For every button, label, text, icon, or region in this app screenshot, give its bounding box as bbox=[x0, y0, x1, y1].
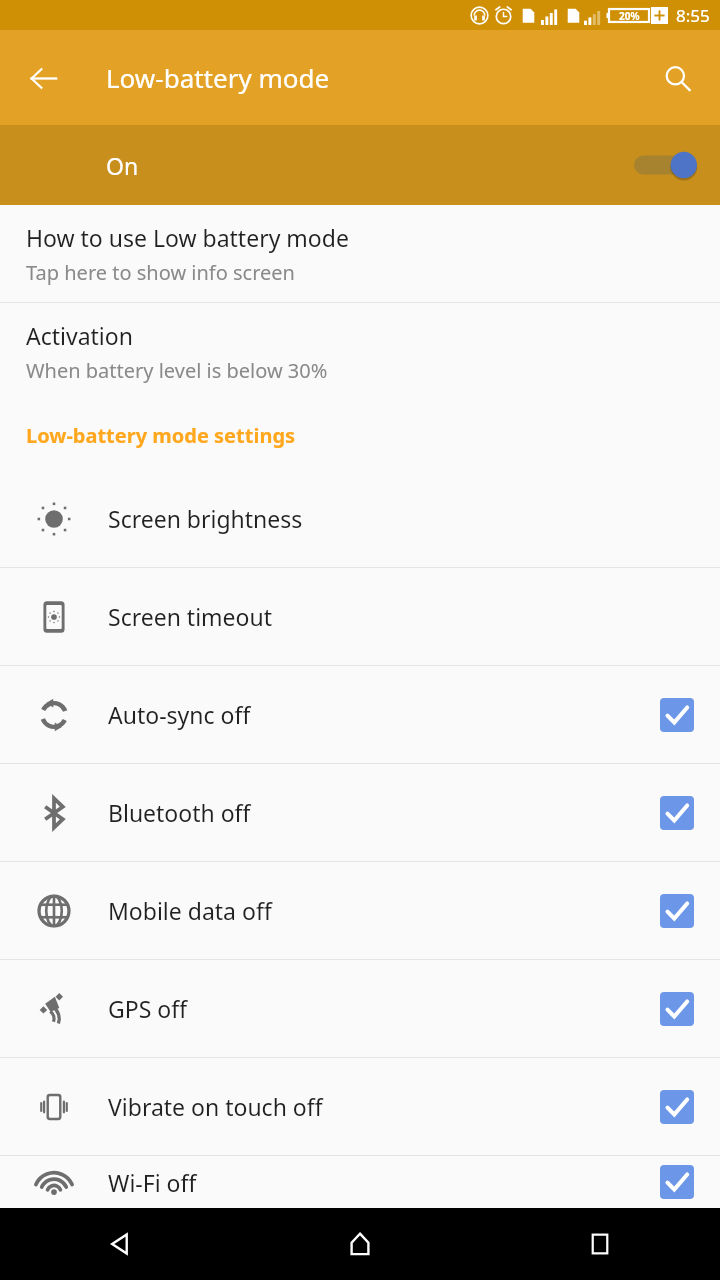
staticText: Tap here to show info screen bbox=[26, 259, 295, 286]
button[interactable]: On bbox=[0, 125, 720, 205]
button[interactable]: Screen brightness bbox=[0, 470, 720, 567]
button[interactable]: Screen timeout bbox=[0, 568, 720, 665]
staticText: 20% bbox=[619, 9, 640, 23]
staticText: GPS off bbox=[108, 993, 660, 1024]
staticText: Activation bbox=[26, 320, 133, 351]
button[interactable]: Wi-Fi off bbox=[0, 1156, 720, 1208]
button[interactable]: Recent apps bbox=[480, 1208, 720, 1280]
button[interactable]: Bluetooth off bbox=[0, 764, 720, 861]
staticText: Screen timeout bbox=[108, 601, 694, 632]
staticText: Screen brightness bbox=[108, 503, 694, 534]
button[interactable]: Activation bbox=[0, 303, 720, 400]
button[interactable]: Back bbox=[14, 49, 72, 107]
button[interactable]: Home bbox=[240, 1208, 480, 1280]
button[interactable]: Search bbox=[648, 49, 706, 107]
staticText: Low-battery mode settings bbox=[26, 422, 296, 449]
staticText: 8:55 bbox=[676, 4, 710, 27]
staticText: Low-battery mode bbox=[106, 60, 330, 95]
staticText: On bbox=[106, 150, 139, 181]
button[interactable]: Auto-sync off bbox=[0, 666, 720, 763]
button[interactable]: Vibrate on touch off bbox=[0, 1058, 720, 1155]
button[interactable]: Back bbox=[0, 1208, 240, 1280]
staticText: Bluetooth off bbox=[108, 797, 660, 828]
staticText: Mobile data off bbox=[108, 895, 660, 926]
staticText: Vibrate on touch off bbox=[108, 1091, 660, 1122]
staticText: Wi-Fi off bbox=[108, 1167, 660, 1198]
staticText: When battery level is below 30% bbox=[26, 357, 328, 384]
staticText: Auto-sync off bbox=[108, 699, 660, 730]
button[interactable]: GPS off bbox=[0, 960, 720, 1057]
button[interactable]: Mobile data off bbox=[0, 862, 720, 959]
button[interactable]: How to use Low battery mode bbox=[0, 205, 720, 302]
staticText: How to use Low battery mode bbox=[26, 222, 349, 253]
